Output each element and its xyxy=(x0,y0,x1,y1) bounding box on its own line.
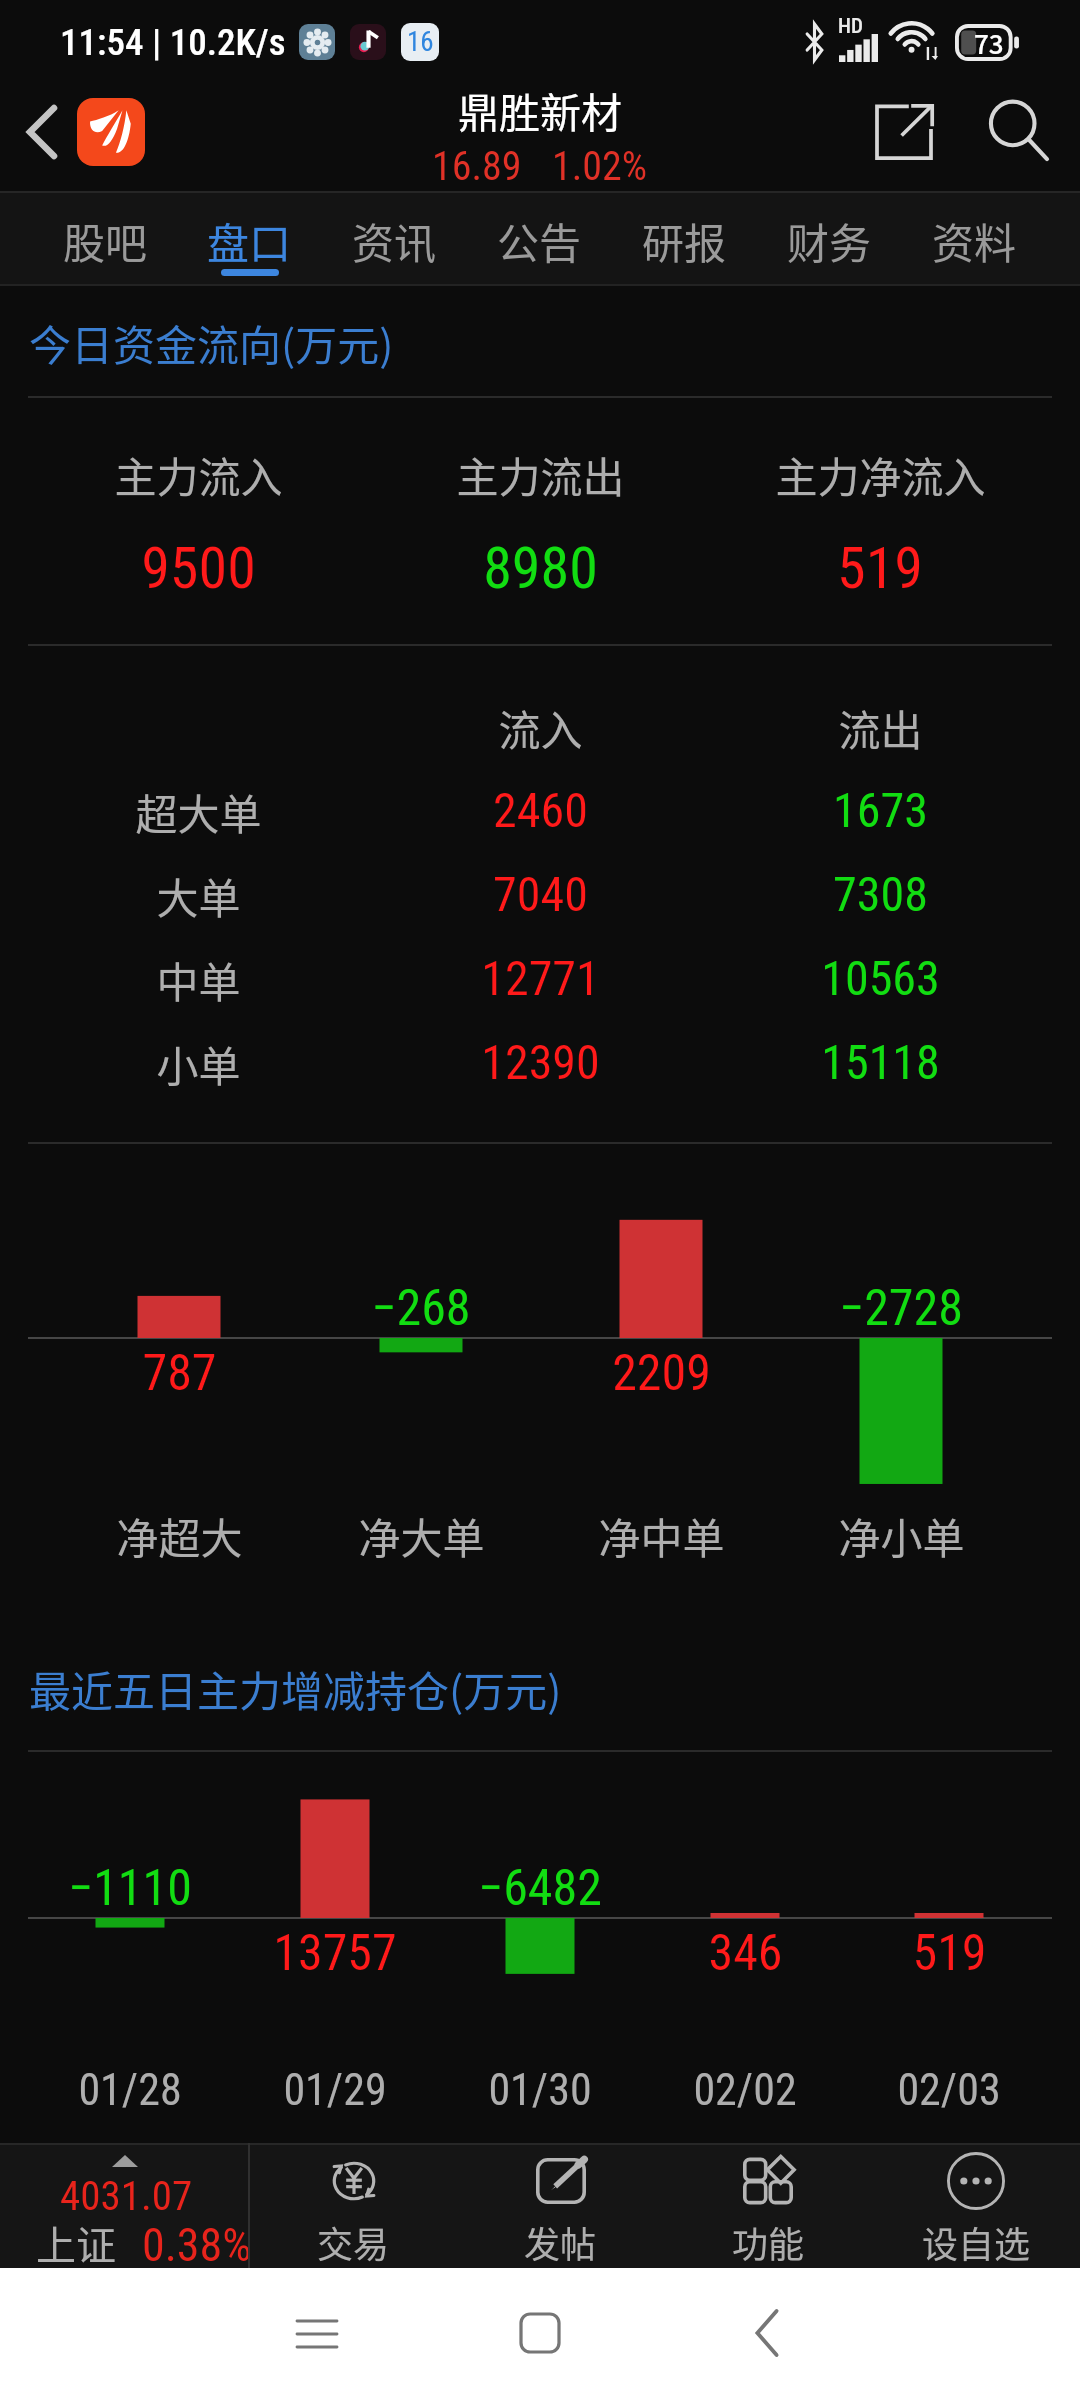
staticText: 设自选 xyxy=(922,2216,1031,2268)
staticText: 交易 xyxy=(317,2216,390,2268)
staticText: 净超大 xyxy=(116,1505,243,1566)
staticText: 16.89 xyxy=(432,143,522,190)
staticText: 股吧 xyxy=(63,210,148,271)
staticText: 发帖 xyxy=(524,2216,597,2268)
button[interactable]: Search xyxy=(972,84,1064,176)
staticText: 主力流出 xyxy=(456,444,625,505)
staticText: 净大单 xyxy=(358,1505,485,1566)
button[interactable]: 股吧 xyxy=(33,191,177,286)
button[interactable]: 4031.07 xyxy=(0,2143,248,2271)
staticText: 01/29 xyxy=(283,2064,387,2116)
staticText: 9500 xyxy=(141,534,256,602)
button[interactable]: 财务 xyxy=(757,191,902,286)
button[interactable]: 资讯 xyxy=(322,191,467,286)
button[interactable]: 资料 xyxy=(902,191,1047,286)
staticText: 11:54 | 10.2K/s xyxy=(60,21,286,64)
staticText: 资讯 xyxy=(352,210,437,271)
staticText: 13757 xyxy=(273,1924,397,1983)
staticText: 01/30 xyxy=(488,2064,592,2116)
staticText: 大单 xyxy=(156,865,241,926)
staticText: 519 xyxy=(837,534,923,602)
staticText: 1673 xyxy=(833,782,928,838)
staticText: 盘口 xyxy=(207,210,292,271)
staticText: 16 xyxy=(407,26,434,58)
staticText: −2728 xyxy=(839,1279,963,1338)
staticText: 1.02% xyxy=(552,143,648,190)
staticText: 鼎胜新材 xyxy=(458,80,622,139)
staticText: 15118 xyxy=(821,1034,940,1090)
staticText: 小单 xyxy=(156,1033,241,1094)
staticText: 787 xyxy=(142,1344,217,1403)
staticText: 02/03 xyxy=(897,2064,1001,2116)
staticText: 346 xyxy=(708,1924,783,1983)
staticText: 02/02 xyxy=(693,2064,797,2116)
staticText: 7308 xyxy=(833,866,928,922)
staticText: 研报 xyxy=(642,210,727,271)
button[interactable]: Recents xyxy=(262,2278,372,2388)
button[interactable]: 设自选 xyxy=(872,2143,1080,2271)
button[interactable]: 公告 xyxy=(467,191,612,286)
staticText: 73 xyxy=(974,24,1004,61)
staticText: 今日资金流向(万元) xyxy=(29,312,394,373)
staticText: 0.38% xyxy=(142,2218,252,2272)
button[interactable]: 研报 xyxy=(612,191,757,286)
staticText: 公告 xyxy=(497,210,582,271)
staticText: 4031.07 xyxy=(60,2172,193,2220)
staticText: 7040 xyxy=(493,866,588,922)
staticText: 资料 xyxy=(932,210,1017,271)
staticText: 10563 xyxy=(821,950,940,1006)
button[interactable]: App home xyxy=(77,98,145,166)
staticText: 财务 xyxy=(787,210,872,271)
staticText: 净小单 xyxy=(838,1505,965,1566)
staticText: 最近五日主力增减持仓(万元) xyxy=(29,1658,562,1719)
staticText: 流出 xyxy=(838,697,923,758)
staticText: 12771 xyxy=(481,950,600,1006)
staticText: 519 xyxy=(912,1924,987,1983)
button[interactable]: 功能 xyxy=(664,2143,872,2271)
staticText: 01/28 xyxy=(78,2064,182,2116)
staticText: 净中单 xyxy=(598,1505,725,1566)
staticText: 中单 xyxy=(156,949,241,1010)
button[interactable]: Back xyxy=(8,98,76,166)
button[interactable]: 发帖 xyxy=(457,2143,664,2271)
staticText: HD xyxy=(838,14,863,39)
staticText: 2460 xyxy=(493,782,588,838)
staticText: 流入 xyxy=(498,697,583,758)
staticText: 超大单 xyxy=(135,781,262,842)
staticText: −268 xyxy=(371,1279,471,1338)
staticText: 上证 xyxy=(36,2214,116,2272)
staticText: 功能 xyxy=(732,2216,805,2268)
button[interactable]: Home xyxy=(485,2278,595,2388)
staticText: −6482 xyxy=(478,1859,602,1918)
button[interactable]: Back xyxy=(712,2278,822,2388)
staticText: 12390 xyxy=(481,1034,600,1090)
button[interactable]: Share xyxy=(858,86,950,178)
staticText: 主力流入 xyxy=(114,444,283,505)
button[interactable]: 盘口 xyxy=(177,191,322,286)
staticText: 8980 xyxy=(483,534,598,602)
button[interactable]: 交易 xyxy=(250,2143,457,2271)
staticText: −1110 xyxy=(68,1859,192,1918)
staticText: 2209 xyxy=(612,1344,711,1403)
staticText: 主力净流入 xyxy=(775,444,986,505)
